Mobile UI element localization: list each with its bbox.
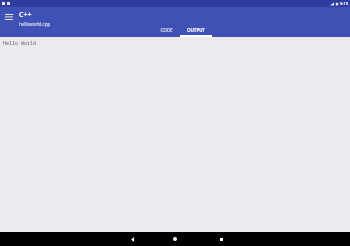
button[interactable]: Recent apps (216, 234, 226, 244)
button[interactable]: Open navigation menu (2, 10, 16, 24)
button[interactable]: OUTPUT (180, 24, 212, 37)
staticText: OUTPUT (187, 27, 205, 33)
button[interactable]: Home (170, 234, 180, 244)
staticText: helloworld.cpp (19, 21, 51, 27)
staticText: 9:19 (340, 1, 348, 6)
staticText: CODE (160, 27, 173, 33)
button[interactable]: CODE (152, 24, 180, 37)
staticText: C++ (19, 10, 32, 20)
button[interactable]: Back (128, 234, 138, 244)
staticText: Hello World (3, 40, 37, 47)
